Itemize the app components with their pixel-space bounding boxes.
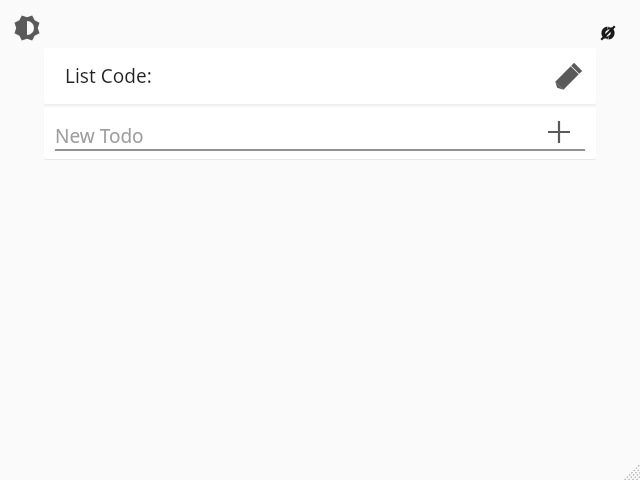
staticText: New Todo xyxy=(55,123,144,149)
button[interactable]: Edit list code xyxy=(549,56,589,96)
button[interactable]: Sync disabled xyxy=(588,13,628,53)
button[interactable]: List Code: xyxy=(44,48,596,104)
button[interactable]: Add todo xyxy=(540,114,578,152)
button[interactable]: New Todo xyxy=(55,112,585,154)
staticText: List Code: xyxy=(65,63,152,89)
button[interactable]: Toggle theme brightness xyxy=(7,8,47,48)
